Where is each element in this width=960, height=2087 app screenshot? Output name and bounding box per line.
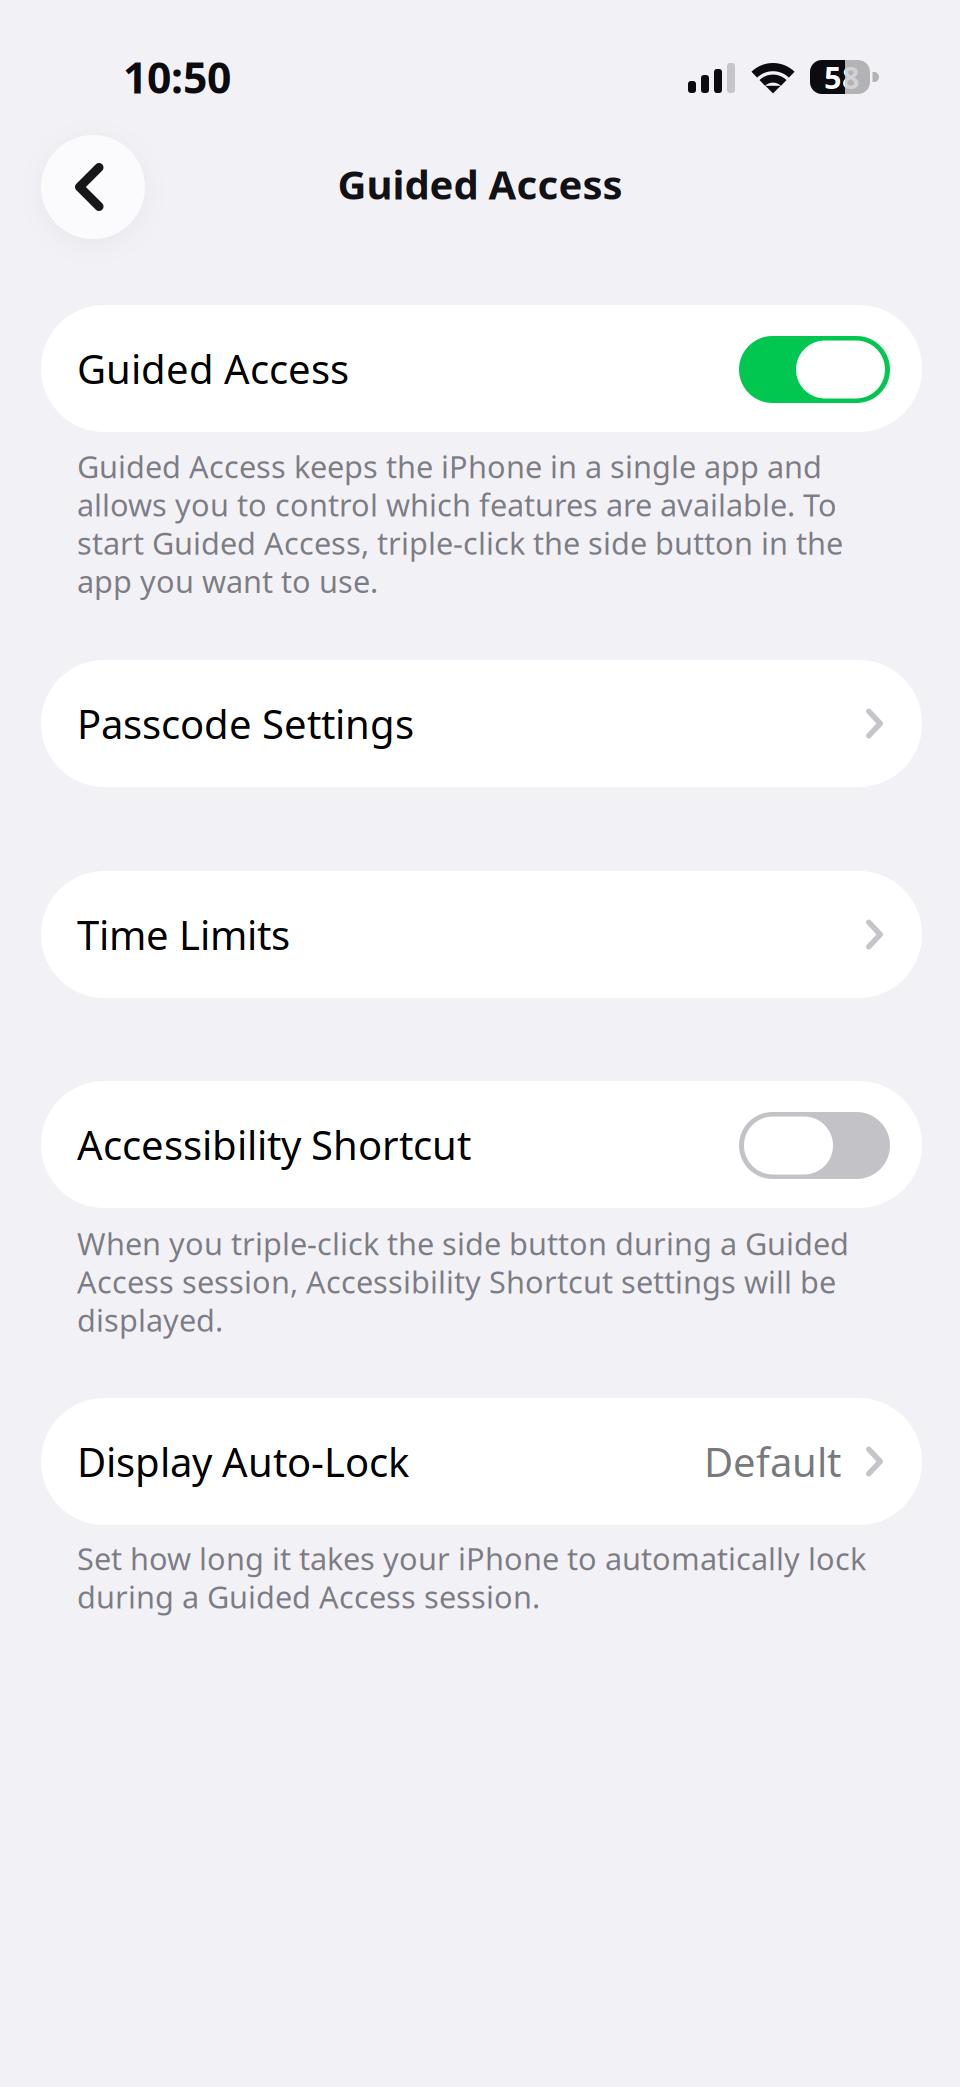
- button[interactable]: Accessibility Shortcut: [41, 1081, 922, 1208]
- staticText: Default: [704, 1435, 841, 1488]
- button[interactable]: Display Auto-Lock: [41, 1398, 922, 1525]
- button[interactable]: Guided Access: [41, 305, 922, 432]
- staticText: Guided Access: [77, 342, 349, 395]
- staticText: 10:50: [123, 49, 231, 105]
- button[interactable]: Back: [41, 135, 145, 239]
- button[interactable]: Time Limits: [41, 871, 922, 998]
- staticText: Set how long it takes your iPhone to aut…: [77, 1538, 866, 1617]
- staticText: Accessibility Shortcut: [77, 1118, 471, 1171]
- staticText: 58: [824, 57, 860, 97]
- staticText: When you triple-click the side button du…: [77, 1223, 849, 1340]
- staticText: Guided Access keeps the iPhone in a sing…: [77, 446, 843, 601]
- staticText: Display Auto-Lock: [77, 1435, 409, 1488]
- staticText: 58: [824, 57, 860, 97]
- button[interactable]: Passcode Settings: [41, 660, 922, 787]
- staticText: Passcode Settings: [77, 697, 414, 750]
- staticText: Time Limits: [77, 908, 290, 961]
- staticText: Guided Access: [337, 157, 622, 210]
